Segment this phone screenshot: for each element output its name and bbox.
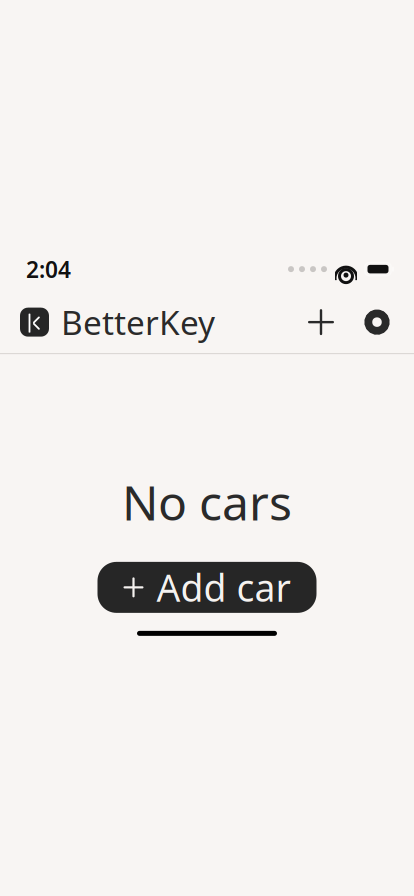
staticText: 2:04 [26,254,71,284]
staticText: BetterKey [61,300,215,344]
staticText: No cars [122,470,292,534]
staticText: Add car [156,563,290,612]
button[interactable]: Add car [97,562,316,613]
button[interactable]: Add [298,299,344,345]
button[interactable]: Settings [354,299,400,345]
